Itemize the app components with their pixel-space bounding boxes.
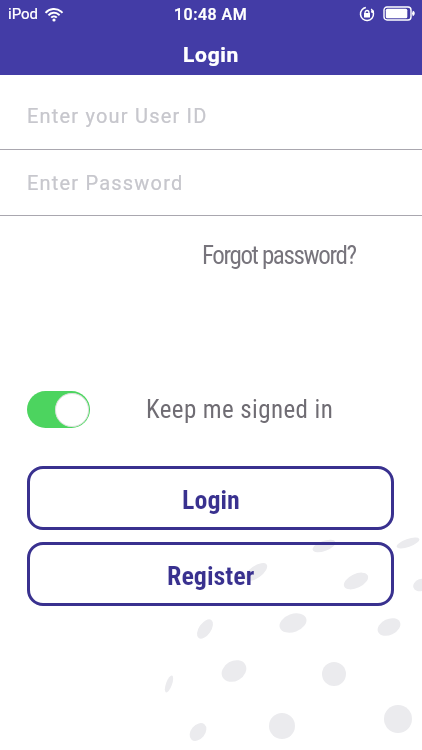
staticText: Login [183,43,240,68]
button[interactable]: Login [27,466,394,530]
button[interactable]: Forgot password? [202,241,356,270]
staticText: Enter Password [27,171,184,194]
button[interactable]: Enter Password [0,150,422,216]
staticText: Keep me signed in [146,395,334,424]
staticText: iPod [8,5,39,23]
staticText: Login [182,485,240,515]
staticText: 10:48 AM [174,5,248,24]
button[interactable]: Enter your User ID [0,75,422,150]
button[interactable]: Register [27,542,394,606]
staticText: Register [167,561,255,591]
staticText: Enter your User ID [27,104,208,127]
button[interactable] [27,391,90,428]
